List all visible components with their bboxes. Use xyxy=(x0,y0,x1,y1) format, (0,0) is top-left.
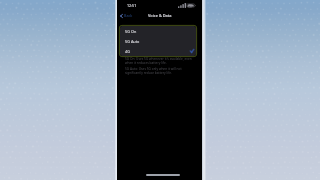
button[interactable]: 5G Auto xyxy=(120,36,196,46)
staticText: Voice & Data xyxy=(148,13,172,18)
button[interactable]: Back xyxy=(119,12,134,19)
button[interactable]: 4G xyxy=(120,46,196,56)
other: Selected xyxy=(190,49,194,53)
other: Signal, Wi-Fi and battery status xyxy=(178,3,196,8)
staticText: 4G xyxy=(125,49,130,54)
staticText: 5G Auto xyxy=(125,39,140,44)
button[interactable]: 5G On xyxy=(120,26,196,36)
staticText: 5G On: Uses 5G whenever it's available, … xyxy=(125,57,197,65)
staticText: Back xyxy=(124,13,133,18)
staticText: 12:51 xyxy=(127,3,137,8)
staticText: 5G On xyxy=(125,29,137,34)
staticText: 5G Auto: Uses 5G only when it will not s… xyxy=(125,67,197,75)
